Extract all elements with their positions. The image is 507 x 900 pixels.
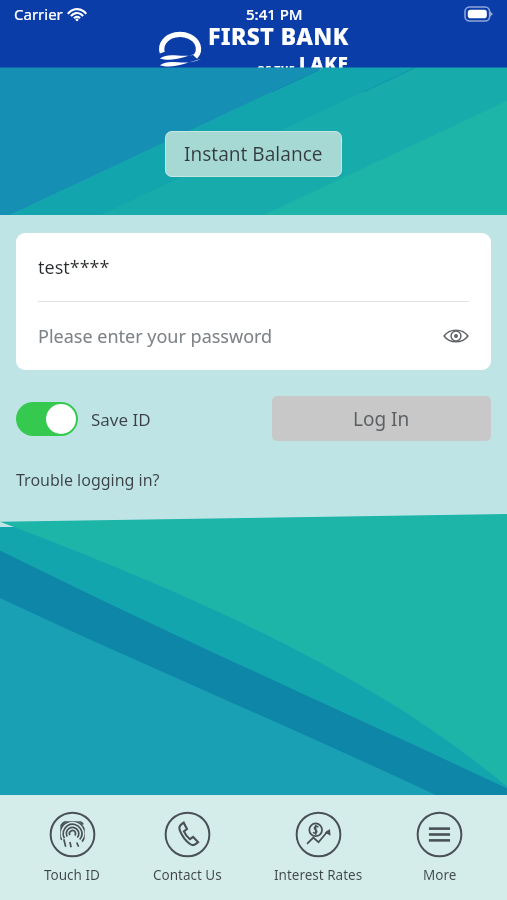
staticText: FIRST BANK bbox=[208, 20, 349, 51]
button[interactable]: Please enter your password bbox=[16, 302, 491, 370]
staticText: More bbox=[423, 866, 457, 884]
staticText: Touch ID bbox=[44, 866, 100, 884]
button[interactable]: test**** bbox=[16, 233, 491, 301]
staticText: Please enter your password bbox=[38, 324, 273, 349]
staticText: Instant Balance bbox=[184, 141, 323, 167]
staticText: 5:41 PM bbox=[246, 4, 303, 24]
other: Show password bbox=[443, 323, 469, 349]
staticText: Carrier bbox=[14, 4, 63, 24]
staticText: Trouble logging in? bbox=[16, 469, 160, 491]
button[interactable]: Interest Rates bbox=[266, 807, 371, 888]
button[interactable]: Touch ID bbox=[36, 807, 108, 888]
staticText: OF THE bbox=[257, 63, 296, 77]
staticText: Contact Us bbox=[153, 866, 222, 884]
staticText: Save ID bbox=[91, 408, 151, 431]
button[interactable]: Instant Balance bbox=[165, 131, 342, 177]
staticText: test**** bbox=[38, 255, 110, 280]
button[interactable]: Log In bbox=[272, 396, 491, 441]
button[interactable]: Save ID bbox=[16, 402, 151, 436]
staticText: Log In bbox=[353, 406, 410, 432]
staticText: LAKE bbox=[299, 51, 349, 77]
button[interactable]: Contact Us bbox=[145, 807, 230, 888]
button[interactable]: More bbox=[408, 807, 471, 888]
staticText: Interest Rates bbox=[274, 866, 363, 884]
button[interactable]: Trouble logging in? bbox=[16, 469, 160, 491]
